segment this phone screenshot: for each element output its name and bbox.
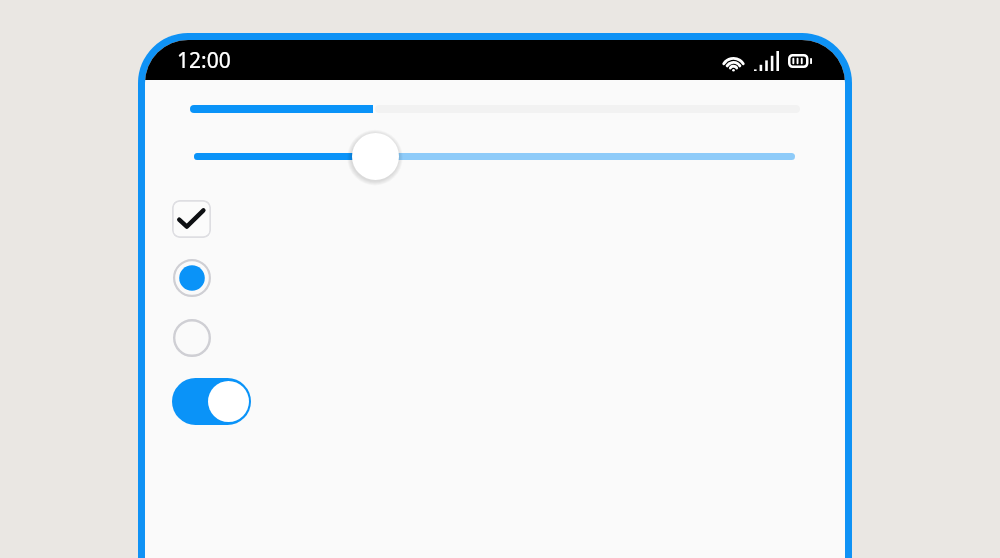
button[interactable]: Checkbox, checked	[172, 200, 211, 238]
button[interactable]: Radio button, not selected	[173, 319, 211, 357]
button[interactable]: Radio button, selected	[173, 259, 211, 297]
button[interactable]: Mobile signal strength	[754, 51, 779, 71]
button[interactable]: Slider, 30 percent	[190, 126, 800, 186]
button[interactable]: Battery level	[788, 54, 812, 68]
button[interactable]: Linear progress indicator, 30 percent	[190, 102, 800, 116]
button[interactable]: Switch, on	[172, 378, 251, 425]
staticText: 12:00	[177, 46, 231, 75]
button[interactable]: Wi-Fi connected	[721, 50, 746, 71]
